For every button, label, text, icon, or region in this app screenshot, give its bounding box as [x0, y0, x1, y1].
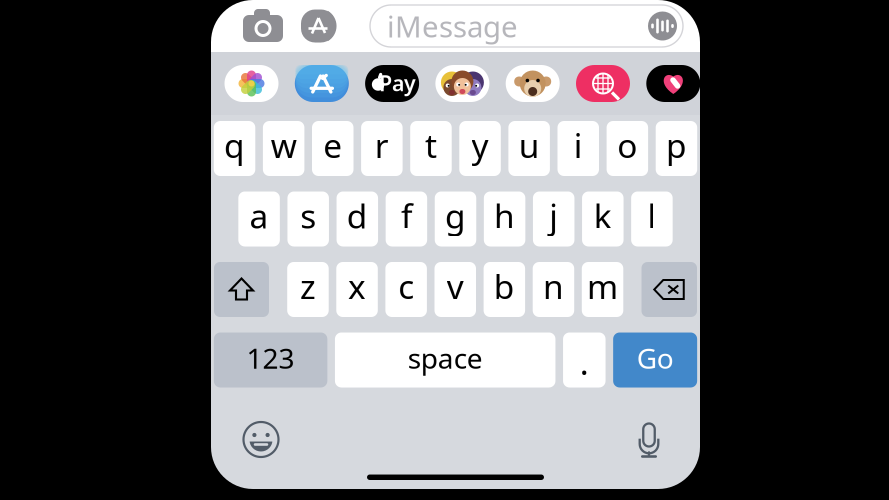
button[interactable]: n: [533, 262, 574, 317]
staticText: space: [408, 339, 483, 377]
button[interactable]: z: [287, 262, 329, 317]
button[interactable]: l: [631, 191, 673, 246]
staticText: Go: [637, 339, 674, 377]
button[interactable]: r: [361, 121, 403, 176]
staticText: t: [425, 123, 437, 167]
button[interactable]: t: [410, 121, 452, 176]
button[interactable]: w: [263, 121, 304, 176]
button[interactable]: p: [656, 121, 697, 176]
staticText: h: [494, 193, 515, 238]
staticText: b: [494, 264, 515, 308]
button[interactable]: x: [336, 262, 378, 317]
button[interactable]: Photos: [224, 65, 278, 102]
button[interactable]: k: [582, 191, 624, 246]
button[interactable]: h: [484, 191, 525, 246]
button[interactable]: 123: [214, 332, 327, 387]
button[interactable]: Dictation: [624, 414, 674, 464]
staticText: u: [519, 123, 540, 167]
button[interactable]: .: [563, 332, 605, 387]
button[interactable]: Camera: [232, 0, 294, 52]
staticText: Pay: [379, 69, 416, 97]
button[interactable]: a: [238, 191, 280, 246]
button[interactable]: y: [459, 121, 501, 176]
staticText: z: [300, 264, 316, 308]
button[interactable]: Apple Pay: [365, 65, 419, 102]
button[interactable]: u: [508, 121, 550, 176]
staticText: x: [348, 264, 366, 308]
staticText: iMessage: [387, 6, 518, 45]
button[interactable]: s: [287, 191, 329, 246]
button[interactable]: i: [557, 121, 599, 176]
staticText: v: [447, 264, 464, 308]
staticText: r: [375, 123, 389, 167]
button[interactable]: m: [582, 262, 623, 317]
button[interactable]: c: [385, 262, 427, 317]
staticText: q: [224, 123, 245, 167]
button[interactable]: Go: [613, 332, 697, 387]
button[interactable]: v: [434, 262, 476, 317]
staticText: n: [543, 264, 564, 308]
staticText: d: [347, 193, 368, 238]
staticText: 123: [247, 339, 295, 377]
button[interactable]: Image search: [576, 65, 630, 102]
button[interactable]: Memoji: [435, 65, 489, 102]
staticText: y: [472, 123, 489, 167]
button[interactable]: App Store: [295, 65, 349, 102]
button[interactable]: e: [312, 121, 353, 176]
button[interactable]: b: [484, 262, 525, 317]
staticText: w: [271, 123, 297, 167]
staticText: c: [398, 264, 414, 308]
staticText: p: [666, 123, 687, 167]
button[interactable]: Animoji: [506, 65, 560, 102]
button[interactable]: Emoji: [236, 414, 286, 464]
button[interactable]: q: [214, 121, 255, 176]
button[interactable]: Shift: [214, 262, 269, 317]
staticText: i: [574, 123, 583, 167]
button[interactable]: Delete: [641, 262, 697, 317]
button[interactable]: Apps: [294, 0, 348, 52]
staticText: o: [617, 123, 637, 167]
staticText: f: [401, 193, 412, 238]
staticText: l: [647, 193, 656, 238]
button[interactable]: space: [335, 332, 555, 387]
button[interactable]: g: [435, 191, 476, 246]
button[interactable]: d: [337, 191, 378, 246]
staticText: a: [250, 193, 269, 238]
staticText: .: [580, 340, 589, 384]
staticText: s: [300, 193, 316, 238]
button[interactable]: Digital Touch: [646, 65, 700, 102]
staticText: k: [594, 193, 612, 238]
button[interactable]: f: [386, 191, 427, 246]
staticText: j: [549, 193, 558, 238]
button[interactable]: iMessage: [370, 5, 683, 47]
staticText: m: [587, 264, 618, 308]
staticText: g: [445, 193, 466, 238]
button[interactable]: j: [533, 191, 574, 246]
staticText: e: [323, 123, 342, 167]
button[interactable]: o: [607, 121, 648, 176]
